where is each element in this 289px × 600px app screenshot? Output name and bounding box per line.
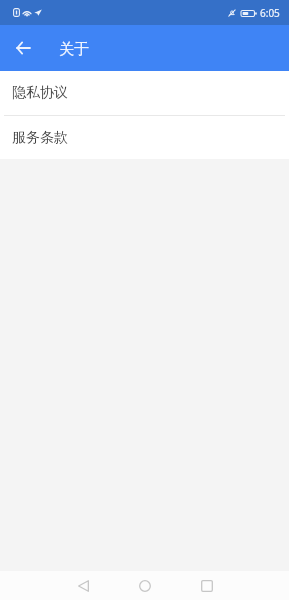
staticText: 服务条款 [12, 129, 68, 147]
button[interactable]: Home [127, 571, 163, 600]
staticText: 关于 [59, 40, 89, 59]
button[interactable]: Recents [189, 571, 225, 600]
button[interactable]: Back [65, 571, 101, 600]
button[interactable]: Back [9, 34, 37, 62]
staticText: 6:05 [260, 6, 280, 20]
button[interactable]: 隐私协议 [0, 71, 289, 115]
button[interactable]: 服务条款 [0, 116, 289, 159]
staticText: 隐私协议 [12, 84, 68, 102]
